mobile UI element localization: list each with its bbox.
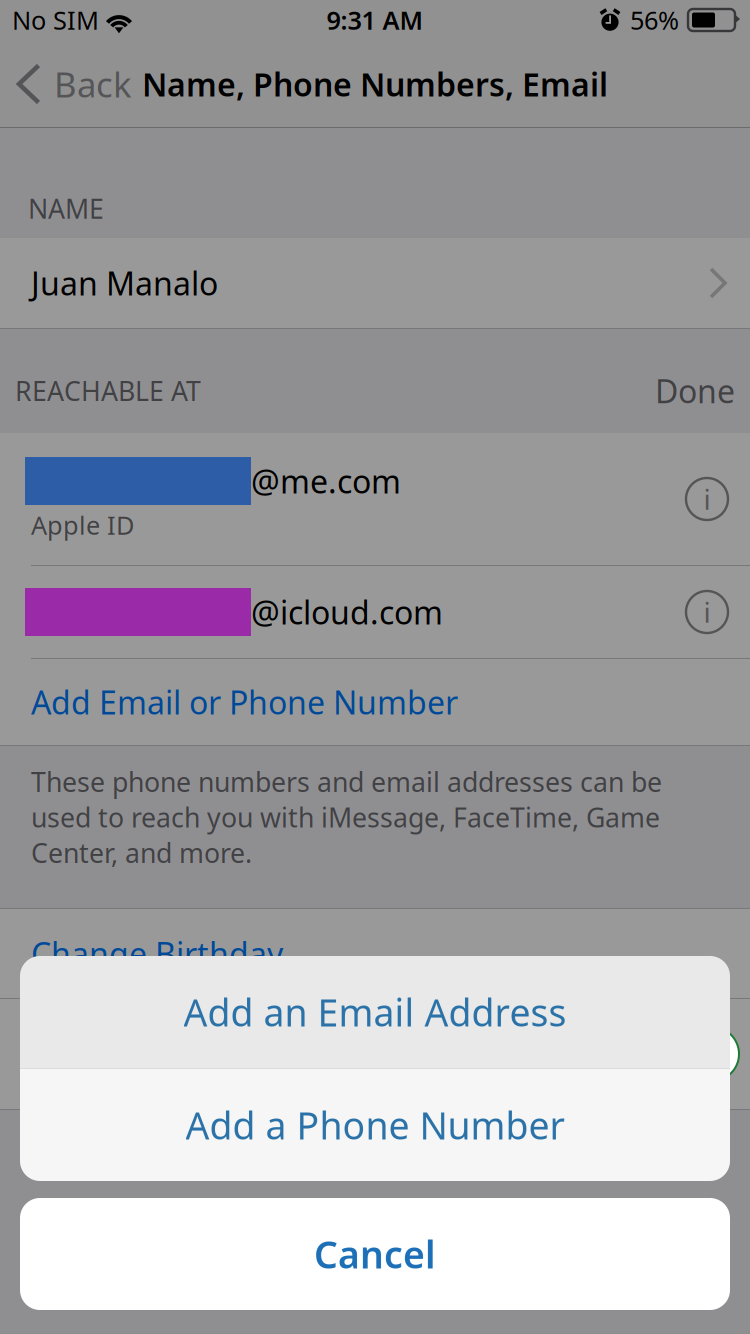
staticText: Apple ID bbox=[31, 508, 134, 542]
button[interactable]: Add Email or Phone Number bbox=[0, 659, 750, 745]
staticText: No SIM bbox=[12, 3, 99, 37]
staticText: i bbox=[703, 593, 710, 631]
staticText: i bbox=[703, 480, 710, 518]
staticText: 56% bbox=[630, 3, 679, 37]
staticText: NAME bbox=[28, 191, 104, 226]
button[interactable]: Back bbox=[0, 40, 142, 128]
button[interactable]: Done bbox=[655, 369, 750, 412]
staticText: 9:31 AM bbox=[326, 3, 423, 37]
staticText: Done bbox=[655, 369, 735, 412]
button[interactable]: Change Birthday bbox=[0, 909, 750, 998]
button[interactable]: More info bbox=[685, 590, 729, 634]
staticText: These phone numbers and email addresses … bbox=[31, 764, 662, 870]
staticText: Add Email or Phone Number bbox=[31, 681, 458, 723]
button[interactable]: Juan Manalo bbox=[0, 238, 750, 328]
button[interactable]: Add an Email Address bbox=[20, 956, 730, 1068]
staticText: @icloud.com bbox=[251, 591, 443, 633]
staticText: Change Birthday bbox=[31, 932, 283, 975]
button[interactable]: Cancel bbox=[20, 1198, 730, 1310]
staticText: Back bbox=[54, 61, 132, 107]
button[interactable]: Add a Phone Number bbox=[20, 1069, 730, 1181]
staticText: @me.com bbox=[251, 460, 401, 502]
staticText: Cancel bbox=[314, 1229, 436, 1279]
staticText: Add an Email Address bbox=[183, 987, 566, 1037]
staticText: Add a Phone Number bbox=[185, 1100, 564, 1150]
staticText: REACHABLE AT bbox=[15, 373, 201, 408]
staticText: Name, Phone Numbers, Email bbox=[142, 63, 608, 105]
staticText: Juan Manalo bbox=[31, 262, 218, 304]
button[interactable]: More info bbox=[685, 477, 729, 521]
